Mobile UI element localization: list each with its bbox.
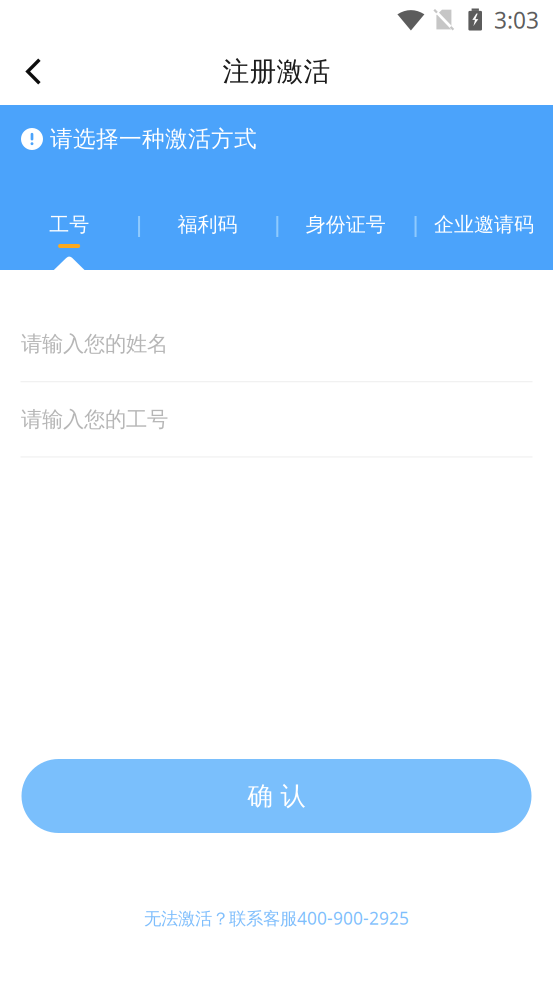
button[interactable]: 身份证号 [276,212,415,248]
staticText: 福利码 [177,212,237,237]
staticText: 身份证号 [306,212,386,237]
button[interactable]: 福利码 [138,212,276,248]
staticText: 请选择一种激活方式 [50,125,257,153]
button[interactable]: Back [0,38,62,105]
staticText: 注册激活 [222,55,330,88]
button[interactable]: 工号 [0,212,138,248]
staticText: 企业邀请码 [434,212,534,237]
button[interactable]: 企业邀请码 [415,212,553,248]
button[interactable]: 确 认 [21,759,531,833]
staticText: 工号 [49,212,89,237]
staticText: 3:03 [494,5,539,35]
staticText: 请输入您的姓名 [21,331,168,357]
staticText: 请输入您的工号 [21,406,168,432]
staticText: 无法激活？联系客服400-900-2925 [144,906,409,929]
button[interactable]: 无法激活？联系客服400-900-2925 [144,907,409,929]
staticText: 确 认 [247,780,305,811]
